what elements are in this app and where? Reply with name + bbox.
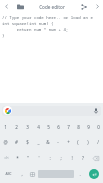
staticText: & xyxy=(46,139,50,145)
staticText: , xyxy=(21,171,23,177)
staticText: 9 xyxy=(87,124,90,130)
button[interactable]: 4 xyxy=(33,119,43,134)
staticText: ( xyxy=(77,139,79,145)
button[interactable]: , xyxy=(17,166,27,182)
button[interactable]: & xyxy=(43,134,53,150)
staticText: ; xyxy=(60,155,62,161)
staticText: 1 xyxy=(4,124,7,130)
staticText: : xyxy=(49,155,51,161)
staticText: } xyxy=(2,33,5,39)
button[interactable]: Enter xyxy=(89,169,99,179)
button[interactable]: / xyxy=(93,134,103,150)
button[interactable]: # xyxy=(11,134,22,150)
staticText: ' xyxy=(38,155,40,161)
button[interactable]: " xyxy=(22,150,33,166)
staticText: @ xyxy=(3,139,8,145)
button[interactable]: 3 xyxy=(22,119,33,134)
button[interactable]: Google search xyxy=(0,103,14,118)
staticText: =\< xyxy=(4,156,9,160)
button[interactable]: 9 xyxy=(83,119,93,134)
button[interactable]: 0 xyxy=(93,119,103,134)
button[interactable]: ABC xyxy=(0,166,17,182)
button[interactable]: ? xyxy=(77,150,88,166)
button[interactable]: 2 xyxy=(11,119,22,134)
button[interactable]: 7 xyxy=(63,119,73,134)
staticText: 8 xyxy=(77,124,80,130)
staticText: 2 xyxy=(15,124,18,130)
button[interactable]: * xyxy=(12,150,22,166)
button[interactable]: Emoji xyxy=(27,166,37,182)
button[interactable]: - xyxy=(53,134,63,150)
staticText: + xyxy=(67,139,70,145)
button[interactable]: ) xyxy=(83,134,93,150)
button[interactable]: Back xyxy=(0,0,13,13)
button[interactable]: + xyxy=(63,134,73,150)
staticText: 6 xyxy=(57,124,60,130)
staticText: ? xyxy=(82,155,84,161)
staticText: 7 xyxy=(67,124,70,130)
staticText: Code editor xyxy=(39,4,65,10)
staticText: return num * num + 4; xyxy=(2,27,69,33)
button[interactable]: : xyxy=(44,150,55,166)
button[interactable]: ; xyxy=(55,150,66,166)
staticText: 4 xyxy=(37,124,40,130)
staticText: ! xyxy=(71,155,73,161)
staticText: / xyxy=(97,139,99,145)
staticText: int square(int num) { xyxy=(2,21,54,27)
button[interactable]: Voice input xyxy=(89,103,103,118)
button[interactable]: 1 xyxy=(0,119,11,134)
button[interactable]: ! xyxy=(66,150,77,166)
button[interactable]: @ xyxy=(0,134,11,150)
button[interactable]: // Type your code here.. or load an e xyxy=(0,13,103,103)
staticText: ABC xyxy=(5,172,12,176)
button[interactable]: Forward xyxy=(91,0,103,13)
button[interactable]: Open file xyxy=(13,0,27,13)
staticText: $ xyxy=(26,139,29,145)
staticText: 3 xyxy=(26,124,29,130)
staticText: 5 xyxy=(47,124,50,130)
button[interactable]: $ xyxy=(22,134,33,150)
staticText: // Type your code here.. or load an e xyxy=(2,15,93,21)
staticText: 0 xyxy=(97,124,100,130)
button[interactable]: 5 xyxy=(43,119,53,134)
button[interactable]: 6 xyxy=(53,119,63,134)
button[interactable]: Share xyxy=(77,0,91,13)
staticText: ) xyxy=(87,139,89,145)
staticText: * xyxy=(16,155,19,161)
staticText: _ xyxy=(37,139,40,145)
button[interactable]: _ xyxy=(33,134,43,150)
button[interactable]: ( xyxy=(73,134,83,150)
button[interactable]: =\< xyxy=(0,150,12,166)
staticText: " xyxy=(27,155,29,161)
staticText: - xyxy=(57,139,59,145)
button[interactable]: 8 xyxy=(73,119,83,134)
staticText: . xyxy=(79,171,81,177)
button[interactable]: Backspace xyxy=(88,150,103,166)
staticText: # xyxy=(15,139,18,145)
